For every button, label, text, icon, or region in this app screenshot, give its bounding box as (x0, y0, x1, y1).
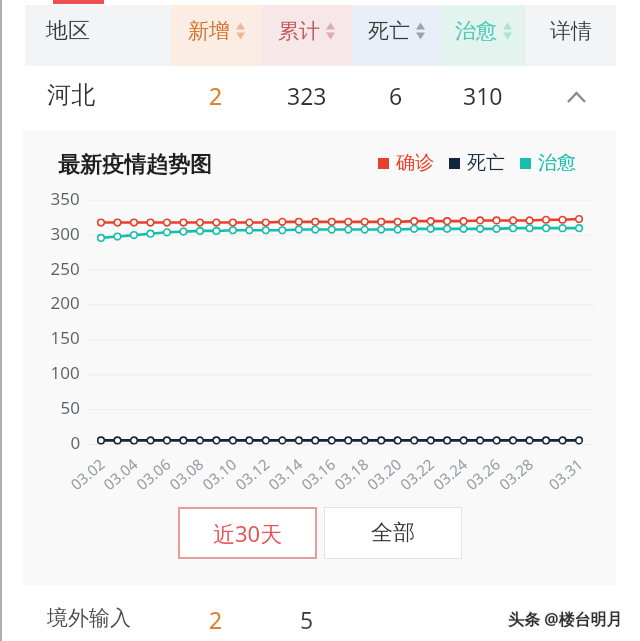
staticText: 死亡 (467, 151, 505, 175)
staticText: 地区 (46, 17, 90, 45)
button[interactable]: 详情 (526, 5, 616, 66)
staticText: 头条 @楼台明月 (508, 608, 623, 630)
staticText: 323 (287, 80, 327, 111)
staticText: 河北 (47, 80, 95, 110)
button[interactable]: 河北 (0, 66, 640, 130)
staticText: 治愈 (538, 151, 576, 175)
staticText: 6 (389, 80, 403, 111)
staticText: 累计 (278, 18, 320, 44)
button[interactable]: 全部 (324, 507, 462, 559)
staticText: 死亡 (368, 18, 410, 44)
staticText: 治愈 (455, 18, 497, 44)
staticText: 最新疫情趋势图 (58, 151, 212, 179)
button[interactable]: 治愈 (440, 5, 526, 66)
button[interactable]: Collapse details (526, 66, 616, 130)
staticText: 2 (209, 604, 223, 635)
button[interactable]: 地区 (25, 5, 171, 66)
button[interactable]: 境外输入 (0, 585, 640, 641)
staticText: 头条 @楼台明月 (507, 607, 622, 629)
staticText: 境外输入 (47, 605, 131, 631)
staticText: 310 (463, 80, 503, 111)
button[interactable]: 累计 (261, 5, 352, 66)
button[interactable]: 新增 (171, 5, 261, 66)
button[interactable]: 死亡 (352, 5, 440, 66)
staticText: 新增 (188, 18, 230, 44)
staticText: 5 (300, 604, 314, 635)
staticText: 确诊 (396, 151, 434, 175)
staticText: 详情 (550, 18, 592, 44)
staticText: 近30天 (213, 518, 283, 548)
staticText: 2 (209, 80, 223, 111)
staticText: 全部 (371, 519, 415, 547)
button[interactable]: 近30天 (178, 507, 317, 559)
